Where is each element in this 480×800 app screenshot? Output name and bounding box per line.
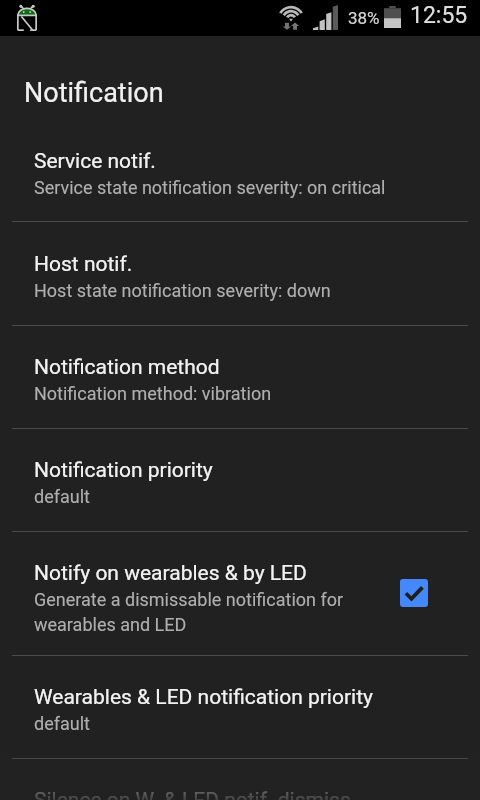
button[interactable]: Notify on wearables and by LED checkbox — [400, 579, 428, 607]
staticText: Service notif. — [34, 149, 156, 174]
staticText: Notification method: vibration — [34, 383, 272, 404]
staticText: Notification method — [34, 355, 220, 380]
button[interactable]: Notification method — [0, 326, 480, 428]
staticText: default — [34, 486, 90, 507]
button[interactable]: Notification priority — [0, 429, 480, 531]
staticText: Notify on wearables & by LED — [34, 561, 307, 586]
button[interactable]: Wearables & LED notification priority — [0, 656, 480, 758]
button[interactable]: Service notif. — [0, 118, 480, 221]
staticText: Host state notification severity: down — [34, 280, 331, 301]
staticText: Notification priority — [34, 458, 213, 483]
staticText: Silence on W. & LED notif. dismiss — [34, 788, 351, 800]
staticText: Notification — [24, 77, 164, 109]
button[interactable]: Silence on W. & LED notif. dismiss — [0, 759, 480, 800]
staticText: Service state notification severity: on … — [34, 177, 386, 198]
button[interactable]: Host notif. — [0, 222, 480, 325]
staticText: Wearables & LED notification priority — [34, 685, 373, 710]
staticText: 38% — [348, 8, 380, 28]
staticText: default — [34, 713, 90, 734]
staticText: Host notif. — [34, 252, 133, 277]
staticText: 12:55 — [410, 2, 468, 29]
staticText: Generate a dismissable notification for … — [34, 589, 384, 635]
button[interactable]: Notify on wearables & by LED — [0, 532, 480, 655]
